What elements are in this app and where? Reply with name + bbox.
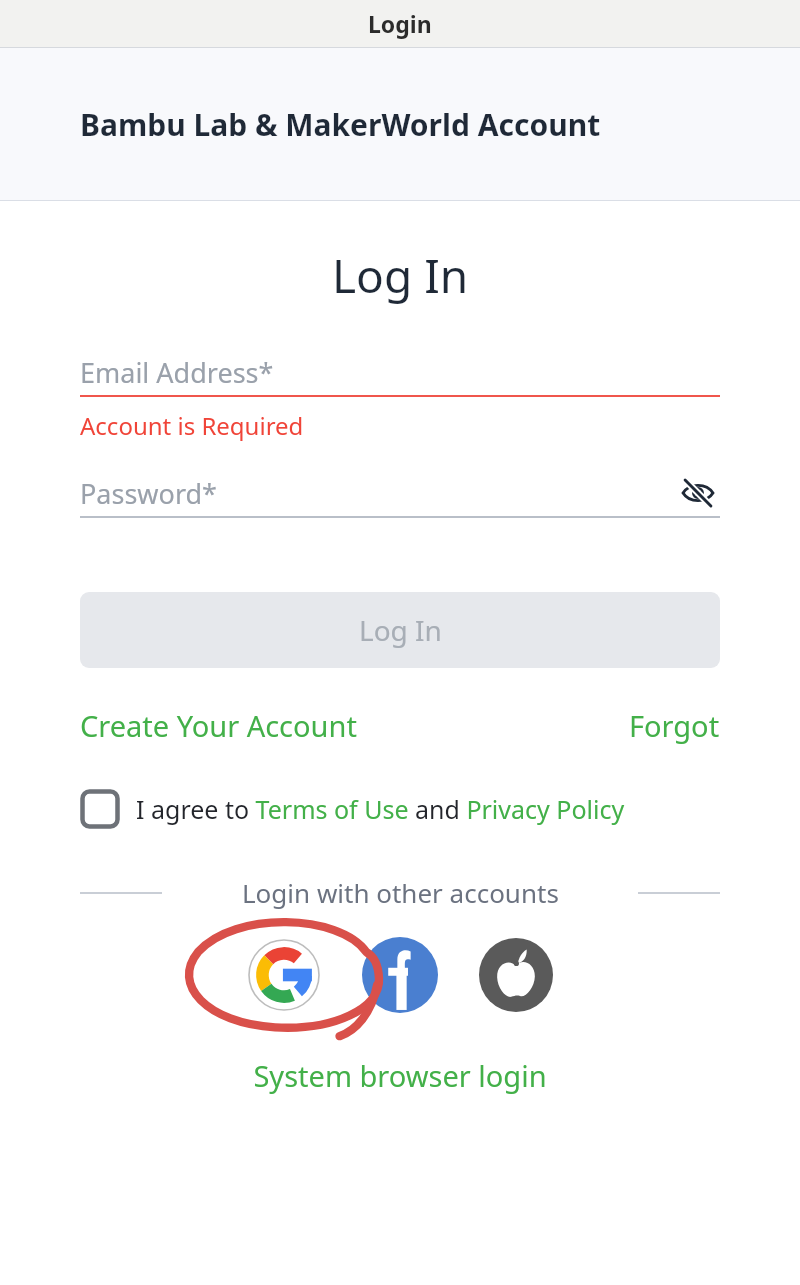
button[interactable]: Sign in with Google [245, 936, 323, 1014]
staticText: Login [368, 8, 432, 39]
button[interactable]: Show password [676, 471, 720, 515]
staticText: Bambu Lab & MakerWorld Account [80, 104, 601, 145]
button[interactable]: Log In [80, 592, 720, 668]
button[interactable]: Create Your Account [80, 706, 357, 745]
staticText: Log In [359, 611, 442, 649]
staticText: Log In [332, 244, 469, 307]
button[interactable]: I agree to Terms of Use and Privacy Poli… [80, 789, 720, 829]
button[interactable]: Forgot [629, 706, 720, 745]
staticText: Password* [80, 475, 676, 512]
button[interactable]: System browser login [253, 1056, 547, 1095]
staticText: Account is Required [80, 409, 304, 442]
staticText: Create Your Account [80, 706, 357, 745]
staticText: System browser login [253, 1056, 547, 1095]
button[interactable]: Sign in with Apple [477, 936, 555, 1014]
staticText: Email Address* [80, 354, 274, 391]
staticText: Forgot [629, 706, 720, 745]
button[interactable]: Password* [80, 470, 720, 516]
button[interactable]: Sign in with Facebook [361, 936, 439, 1014]
button[interactable]: Email Address* [80, 349, 720, 395]
staticText: Login with other accounts [242, 875, 559, 910]
staticText: I agree to Terms of Use and Privacy Poli… [136, 792, 625, 826]
